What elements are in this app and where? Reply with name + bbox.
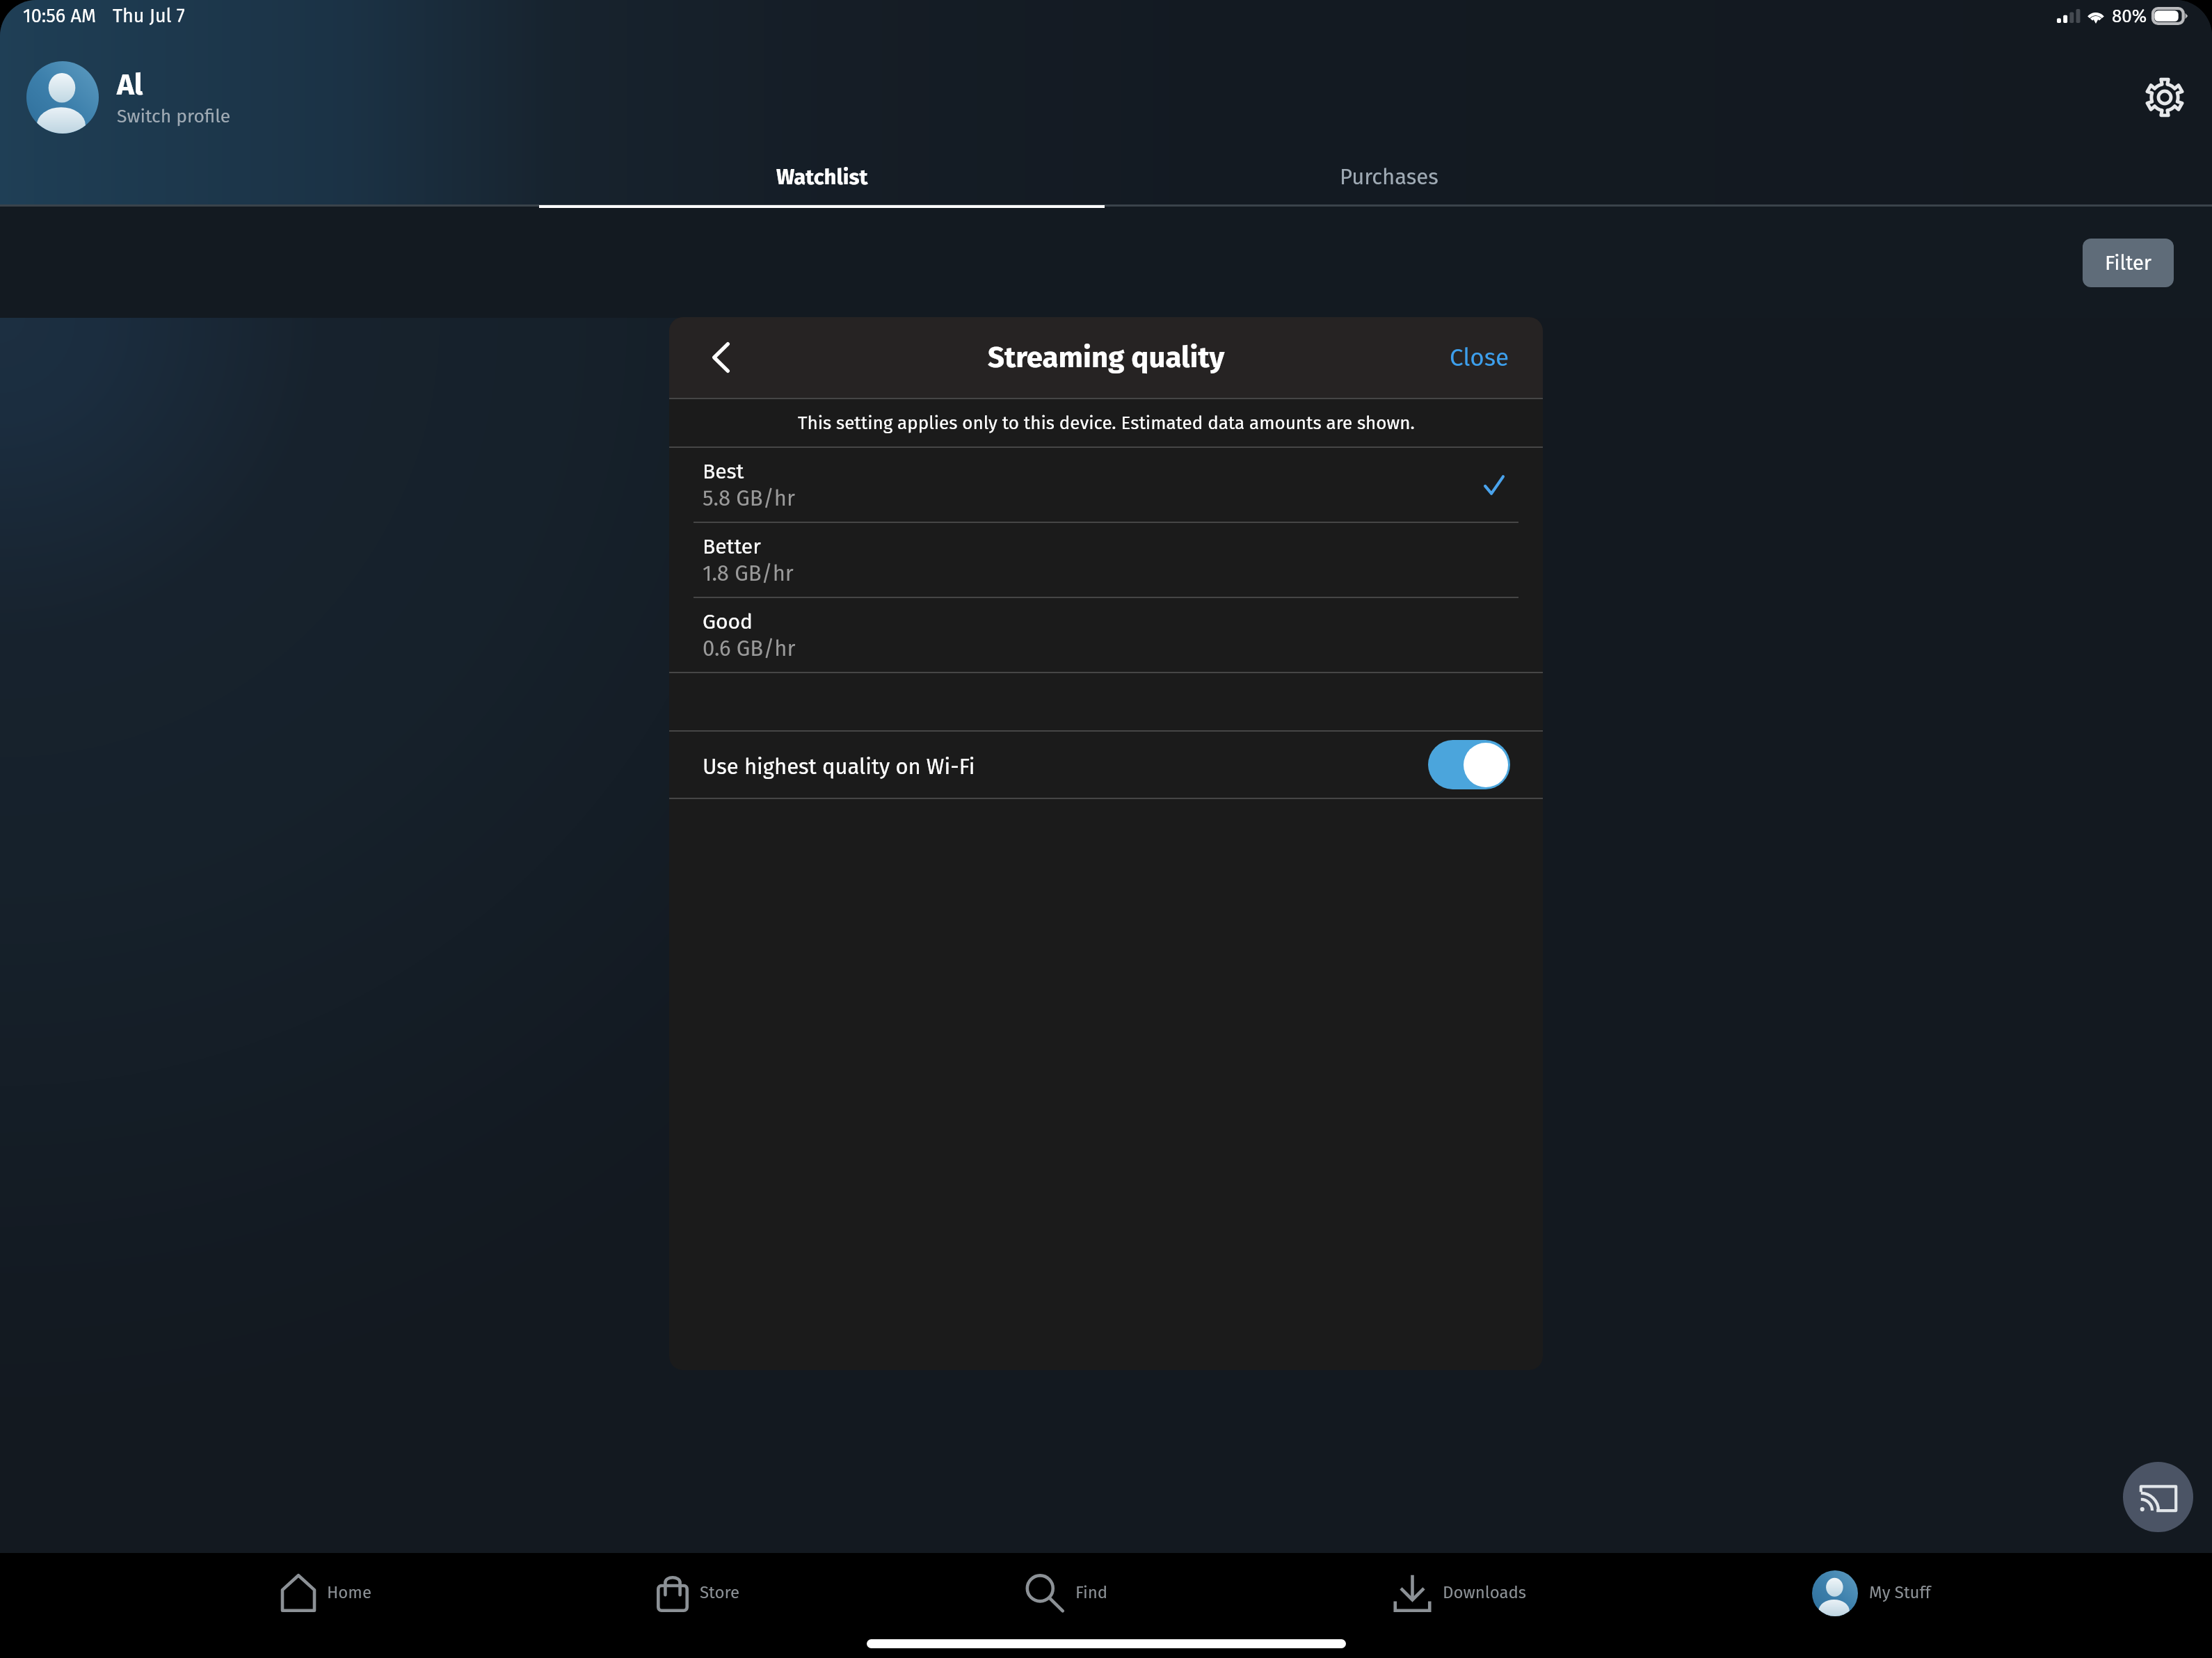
staticText: Thu Jul 7 <box>113 5 185 27</box>
button[interactable]: Settings <box>2134 67 2195 128</box>
staticText: Al <box>117 67 143 102</box>
staticText: Store <box>700 1583 740 1603</box>
button[interactable]: Close <box>1416 328 1543 387</box>
staticText: Best <box>703 459 744 484</box>
staticText: This setting applies only to this device… <box>798 412 1415 434</box>
button[interactable]: Use highest quality on Wi-Fi <box>669 732 1543 798</box>
staticText: Filter <box>2105 251 2151 275</box>
button[interactable]: Store <box>657 1553 740 1633</box>
staticText: 5.8 GB/hr <box>703 485 795 511</box>
button[interactable]: Downloads <box>1393 1553 1527 1633</box>
button[interactable]: Good <box>669 598 1543 672</box>
button[interactable]: Purchases <box>1105 147 1674 208</box>
staticText: Use highest quality on Wi-Fi <box>703 754 975 780</box>
staticText: Watchlist <box>776 164 868 190</box>
staticText: Close <box>1450 343 1509 372</box>
button[interactable]: Watchlist <box>539 147 1105 208</box>
button[interactable]: Cast <box>2123 1462 2193 1532</box>
staticText: 80% <box>2112 6 2147 27</box>
staticText: My Stuff <box>1869 1583 1931 1603</box>
button[interactable]: My Stuff <box>1812 1553 1931 1633</box>
staticText: Switch profile <box>117 105 231 127</box>
staticText: Downloads <box>1443 1583 1527 1603</box>
staticText: 10:56 AM <box>23 5 96 27</box>
staticText: Better <box>703 534 761 559</box>
button[interactable]: Filter <box>2083 239 2174 287</box>
staticText: 1.8 GB/hr <box>703 561 794 586</box>
staticText: Good <box>703 609 753 634</box>
staticText: 0.6 GB/hr <box>703 636 796 661</box>
staticText: Home <box>327 1583 371 1603</box>
button[interactable]: Best <box>669 448 1543 522</box>
button[interactable]: Al <box>26 61 231 134</box>
button[interactable]: Find <box>1025 1553 1108 1633</box>
staticText: Streaming quality <box>988 340 1225 375</box>
staticText: Find <box>1075 1583 1108 1603</box>
staticText: Purchases <box>1340 164 1438 190</box>
button[interactable]: Better <box>669 523 1543 597</box>
button[interactable]: Back <box>696 332 746 383</box>
button[interactable]: Home <box>281 1553 371 1633</box>
